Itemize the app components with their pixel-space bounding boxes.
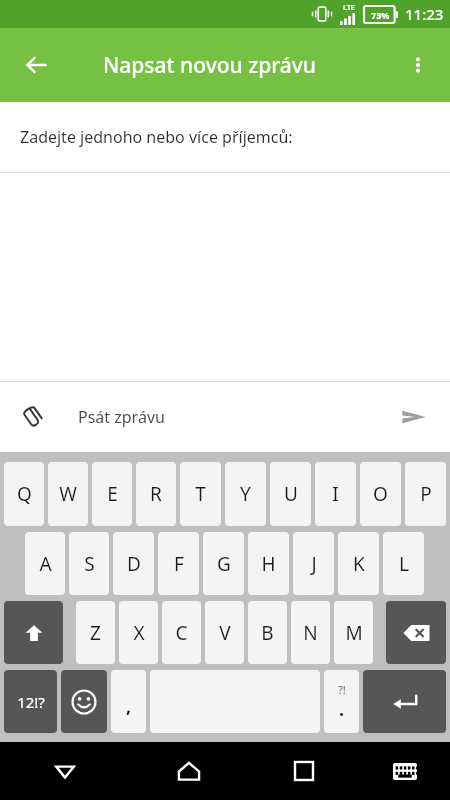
- staticText: F: [174, 551, 184, 577]
- staticText: 12!?: [17, 692, 45, 712]
- staticText: 11:23: [405, 4, 444, 24]
- staticText: Napsat novou zprávu: [103, 51, 316, 80]
- button[interactable]: Back: [0, 742, 130, 800]
- button[interactable]: P: [405, 462, 446, 526]
- button[interactable]: [363, 670, 446, 733]
- staticText: Y: [240, 481, 251, 507]
- staticText: X: [133, 620, 145, 646]
- staticText: C: [175, 620, 188, 646]
- button[interactable]: Psát zprávu: [54, 382, 392, 452]
- button[interactable]: B: [248, 601, 287, 664]
- button[interactable]: Zadejte jednoho nebo více příjemců:: [0, 102, 450, 172]
- staticText: T: [195, 481, 206, 507]
- staticText: M: [345, 620, 363, 646]
- button[interactable]: G: [203, 532, 244, 595]
- staticText: B: [261, 620, 274, 646]
- staticText: Z: [90, 620, 101, 646]
- staticText: Psát zprávu: [78, 406, 165, 428]
- button[interactable]: W: [48, 462, 88, 526]
- button[interactable]: R: [136, 462, 176, 526]
- button[interactable]: C: [162, 601, 201, 664]
- staticText: E: [107, 481, 118, 507]
- staticText: Zadejte jednoho nebo více příjemců:: [20, 126, 293, 148]
- button[interactable]: Q: [4, 462, 44, 526]
- button[interactable]: E: [92, 462, 132, 526]
- button[interactable]: N: [291, 601, 330, 664]
- button[interactable]: V: [205, 601, 244, 664]
- staticText: G: [217, 551, 231, 577]
- staticText: D: [127, 551, 141, 577]
- button[interactable]: X: [119, 601, 158, 664]
- staticText: I: [332, 481, 339, 507]
- button[interactable]: Show keyboard: [360, 742, 450, 800]
- staticText: J: [311, 551, 317, 577]
- other: Backspace: [384, 598, 448, 667]
- staticText: L: [399, 551, 409, 577]
- staticText: Q: [17, 481, 32, 507]
- button[interactable]: O: [360, 462, 401, 526]
- staticText: H: [261, 551, 276, 577]
- staticText: N: [303, 620, 318, 646]
- staticText: W: [59, 481, 77, 507]
- staticText: R: [150, 481, 162, 507]
- button[interactable]: S: [69, 532, 109, 595]
- staticText: S: [84, 551, 95, 577]
- other: Emoji: [59, 667, 109, 736]
- staticText: ?!: [338, 682, 346, 697]
- button[interactable]: U: [270, 462, 311, 526]
- button[interactable]: T: [180, 462, 221, 526]
- button[interactable]: Z: [76, 601, 115, 664]
- button[interactable]: J: [293, 532, 334, 595]
- button[interactable]: Send: [392, 395, 436, 439]
- button[interactable]: [61, 670, 107, 733]
- staticText: ,: [126, 694, 132, 719]
- button[interactable]: K: [338, 532, 379, 595]
- button[interactable]: M: [334, 601, 373, 664]
- staticText: V: [219, 620, 231, 646]
- staticText: O: [373, 481, 388, 507]
- button[interactable]: Recents: [247, 742, 360, 800]
- other: Enter: [361, 667, 448, 736]
- button[interactable]: ?!: [324, 670, 359, 733]
- button[interactable]: Back: [12, 41, 60, 89]
- button[interactable]: I: [315, 462, 356, 526]
- button[interactable]: [4, 601, 63, 664]
- staticText: U: [284, 481, 298, 507]
- staticText: K: [353, 551, 365, 577]
- button[interactable]: Home: [130, 742, 247, 800]
- button[interactable]: A: [25, 532, 65, 595]
- button[interactable]: Attach: [10, 395, 54, 439]
- staticText: LTE: [343, 3, 355, 13]
- button[interactable]: L: [383, 532, 424, 595]
- button[interactable]: [386, 601, 446, 664]
- button[interactable]: Y: [225, 462, 266, 526]
- staticText: A: [39, 551, 52, 577]
- staticText: .: [339, 697, 345, 722]
- staticText: P: [420, 481, 432, 507]
- button[interactable]: ,: [111, 670, 146, 733]
- button[interactable]: More options: [394, 41, 442, 89]
- button[interactable]: F: [158, 532, 199, 595]
- button[interactable]: 12!?: [4, 670, 57, 733]
- staticText: 73%: [371, 9, 390, 21]
- other: Shift: [2, 598, 65, 667]
- button[interactable]: D: [113, 532, 154, 595]
- button[interactable]: H: [248, 532, 289, 595]
